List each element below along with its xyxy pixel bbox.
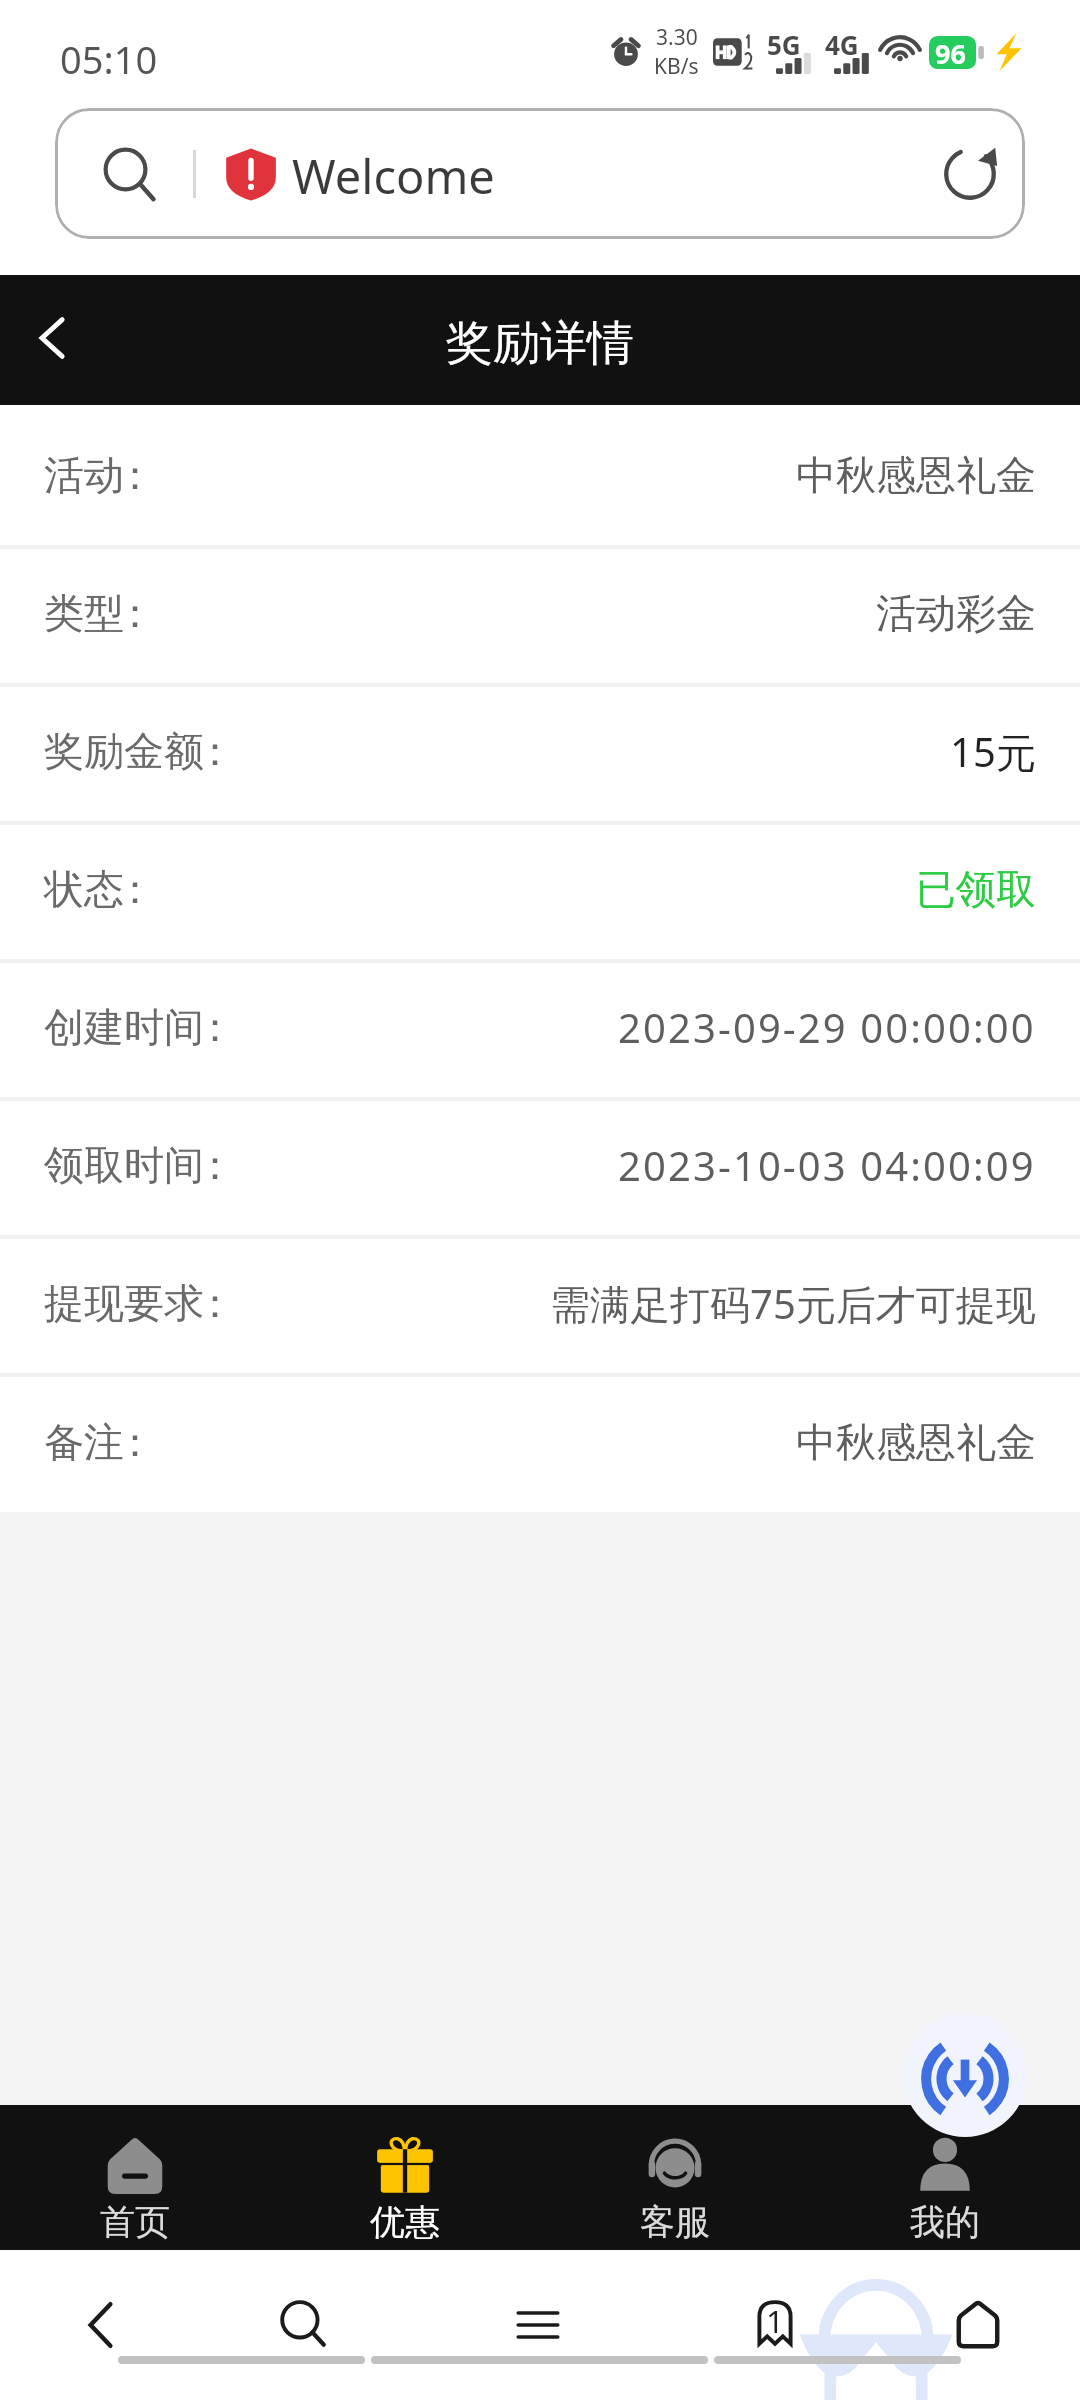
staticText: ： [195,726,235,776]
staticText: 已领取 [916,864,1036,914]
button[interactable]: Tabs [728,2278,822,2372]
staticText: Welcome [292,144,495,208]
button[interactable]: 客服 [540,2105,810,2250]
button[interactable]: Back [54,2278,148,2372]
staticText: 中秋感恩礼金 [796,1417,1036,1467]
button[interactable]: Refresh [925,129,1015,219]
button[interactable]: 首页 [0,2105,270,2250]
staticText: ： [115,864,155,914]
button[interactable]: 类型 [0,549,1080,683]
button[interactable]: 我的 [810,2105,1080,2250]
staticText: 1 [766,2300,784,2342]
staticText: ： [115,588,155,638]
staticText: KB/s [654,52,699,81]
button[interactable]: 优惠 [270,2105,540,2250]
staticText: 活动 [44,450,124,500]
staticText: 我的 [910,2200,980,2244]
staticText: 2023-10-03 04:00:09 [618,1138,1036,1192]
button[interactable]: Back [0,275,110,405]
staticText: 中秋感恩礼金 [796,450,1036,500]
staticText: 需满足打码75元后才可提现 [550,1276,1036,1331]
staticText: 5G [767,27,801,62]
staticText: 4G [825,27,859,62]
staticText: 3.30 [656,23,698,52]
button[interactable]: 备注 [0,1377,1080,1512]
staticText: 状态 [44,864,124,914]
button[interactable]: 状态 [0,825,1080,959]
button[interactable]: 领取时间 [0,1101,1080,1235]
staticText: 奖励详情 [446,314,634,373]
button[interactable]: Menu [491,2278,585,2372]
staticText: ： [195,1140,235,1190]
button[interactable]: 提现要求 [0,1239,1080,1373]
staticText: ： [115,1417,155,1467]
staticText: ： [115,450,155,500]
button[interactable]: 奖励金额 [0,687,1080,821]
button[interactable]: 活动 [0,411,1080,545]
button[interactable]: Search [256,2278,350,2372]
button[interactable]: Welcome [55,108,1025,239]
staticText: 客服 [640,2200,710,2244]
button[interactable]: 创建时间 [0,963,1080,1097]
staticText: 活动彩金 [876,588,1036,638]
staticText: ： [195,1278,235,1328]
staticText: 奖励金额 [44,726,204,776]
staticText: 05:10 [60,33,158,85]
staticText: ： [195,1002,235,1052]
button[interactable]: Home [931,2278,1025,2372]
staticText: 类型 [44,588,124,638]
staticText: 领取时间 [44,1140,204,1190]
staticText: 首页 [100,2200,170,2244]
staticText: 优惠 [370,2200,440,2244]
staticText: 96 [935,35,966,68]
staticText: 2023-09-29 00:00:00 [618,1000,1036,1054]
staticText: 备注 [44,1417,124,1467]
staticText: 15元 [950,724,1036,779]
button[interactable]: Download [903,2013,1027,2137]
staticText: 提现要求 [44,1278,204,1328]
staticText: 创建时间 [44,1002,204,1052]
